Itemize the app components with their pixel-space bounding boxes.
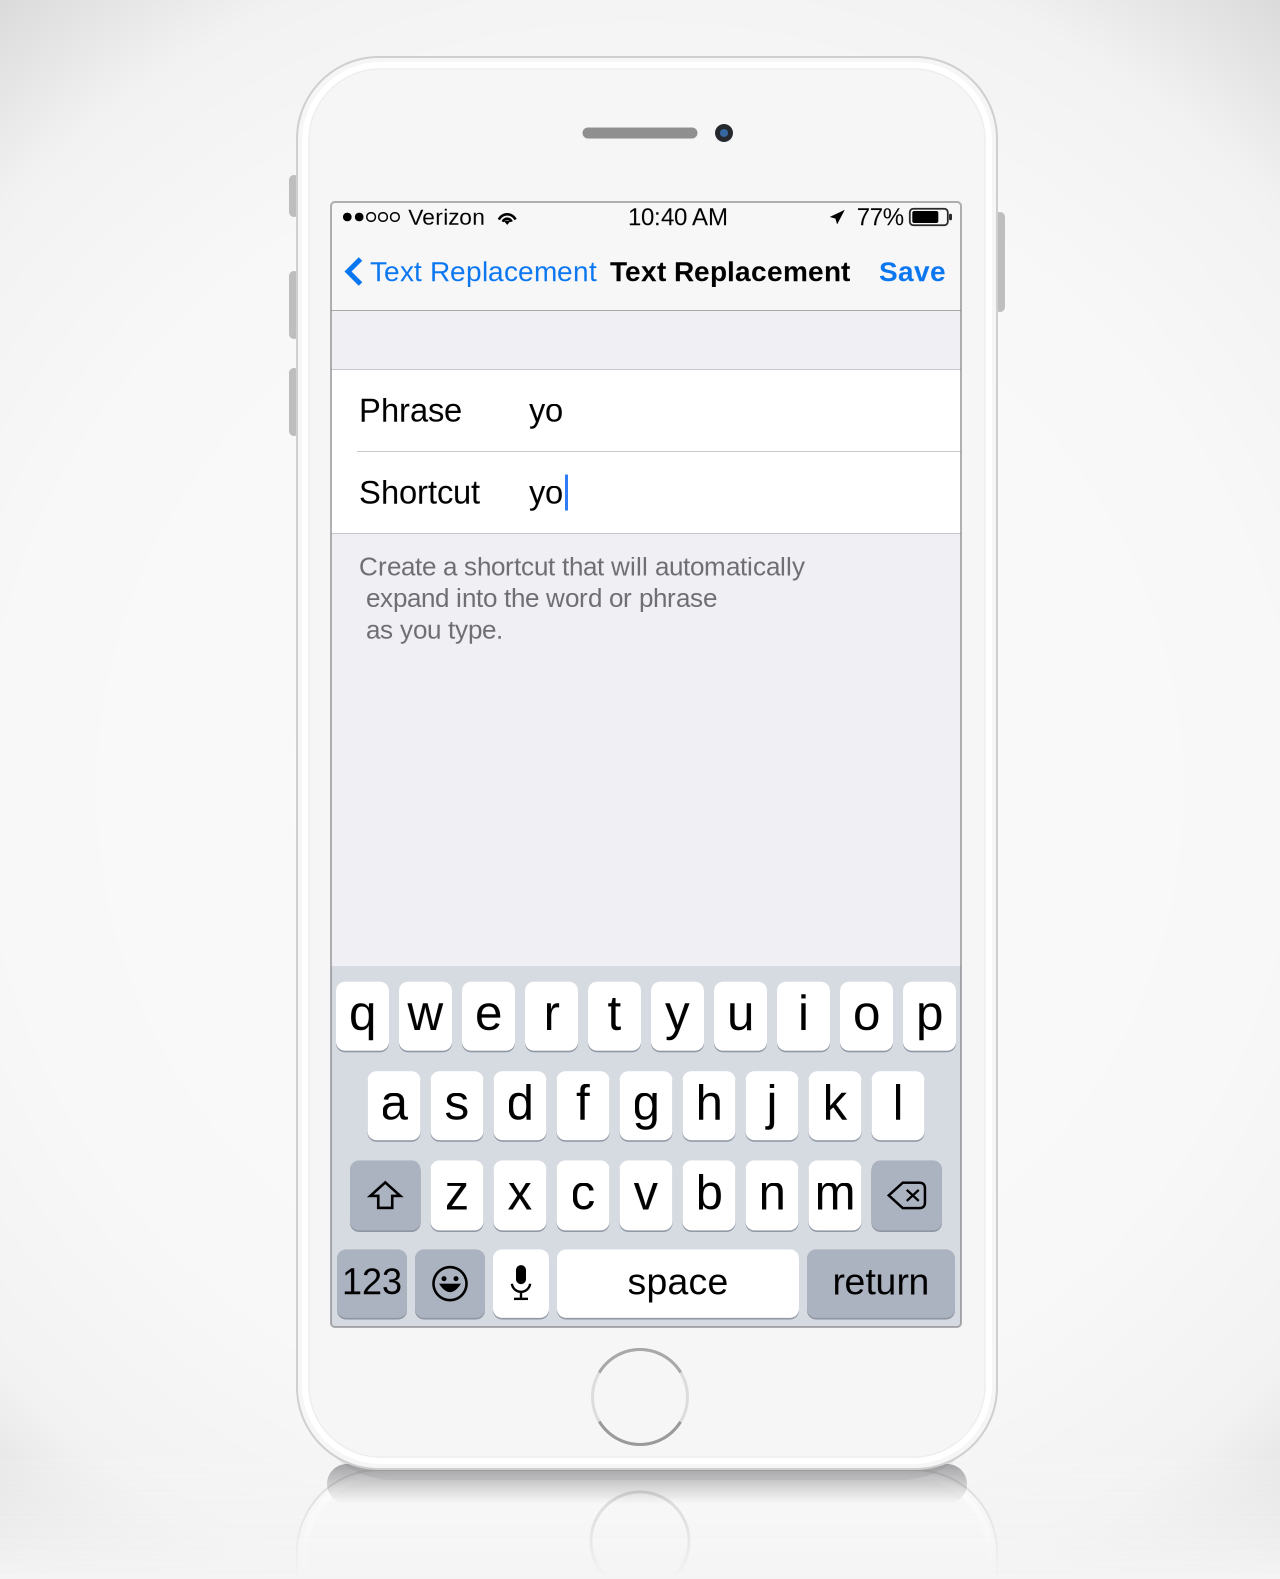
button[interactable]: z [430,1159,483,1232]
staticText: Shortcut [359,474,480,511]
button[interactable]: j [745,1070,798,1142]
button[interactable]: x [493,1159,546,1232]
staticText: d [506,1075,533,1130]
button[interactable]: r [525,980,578,1052]
staticText: v [633,1165,658,1220]
staticText: i [798,986,809,1041]
staticText: r [543,986,559,1041]
button[interactable]: s [430,1070,483,1142]
staticText: h [695,1075,722,1130]
button[interactable]: e [462,980,515,1052]
button[interactable]: t [588,980,641,1052]
staticText: z [444,1165,469,1220]
staticText: a [380,1075,407,1130]
button[interactable]: o [840,980,893,1052]
staticText: Save [879,256,946,287]
staticText: t [607,986,621,1041]
staticText: 77% [857,204,904,230]
button[interactable]: space [557,1248,799,1319]
staticText: l [892,1075,903,1130]
staticText: yo [529,392,563,429]
staticText: m [814,1165,855,1220]
button[interactable]: a [367,1070,420,1142]
button[interactable]: 123 [337,1248,407,1319]
staticText: Text Replacement [610,256,850,287]
button[interactable]: k [808,1070,861,1142]
staticText: k [822,1075,847,1130]
button[interactable]: Delete [871,1159,942,1232]
staticText: f [576,1075,590,1130]
button[interactable]: Shift [350,1159,420,1232]
button[interactable]: Save [869,232,961,311]
staticText: Phrase [359,392,462,429]
staticText: as you type. [359,615,503,644]
staticText: yo [529,474,563,511]
button[interactable]: Shortcut [331,452,961,533]
staticText: Text Replacement [370,256,597,287]
button[interactable]: Text Replacement [331,232,601,311]
button[interactable]: l [871,1070,924,1142]
staticText: g [632,1075,659,1130]
button[interactable]: b [682,1159,735,1232]
staticText: return [832,1261,929,1302]
button[interactable]: y [651,980,704,1052]
button[interactable]: d [493,1070,546,1142]
button[interactable]: m [808,1159,861,1232]
staticText: j [766,1075,777,1130]
staticText: w [407,986,443,1041]
button[interactable]: p [903,980,956,1052]
button[interactable]: u [714,980,767,1052]
staticText: Verizon [408,204,485,230]
button[interactable]: Phrase [331,370,961,451]
button[interactable]: return [807,1248,955,1319]
staticText: expand into the word or phrase [359,583,717,612]
button[interactable]: h [682,1070,735,1142]
staticText: 123 [342,1261,402,1302]
staticText: o [853,986,880,1041]
staticText: c [570,1165,595,1220]
staticText: x [507,1165,532,1220]
button[interactable]: w [399,980,452,1052]
button[interactable]: Dictation [493,1248,549,1319]
staticText: e [475,986,502,1041]
button[interactable]: v [619,1159,672,1232]
staticText: p [916,986,943,1041]
staticText: b [695,1165,722,1220]
button[interactable]: i [777,980,830,1052]
button[interactable]: q [336,980,389,1052]
button[interactable]: f [556,1070,609,1142]
button[interactable]: Emoji [415,1248,485,1319]
staticText: n [758,1165,785,1220]
button[interactable]: c [556,1159,609,1232]
staticText: y [665,986,690,1041]
staticText: q [349,986,376,1041]
staticText: Create a shortcut that will automaticall… [359,552,805,581]
staticText: 10:40 AM [628,204,728,230]
button[interactable]: g [619,1070,672,1142]
staticText: u [727,986,754,1041]
button[interactable]: n [745,1159,798,1232]
staticText: space [627,1261,728,1302]
staticText: s [444,1075,469,1130]
